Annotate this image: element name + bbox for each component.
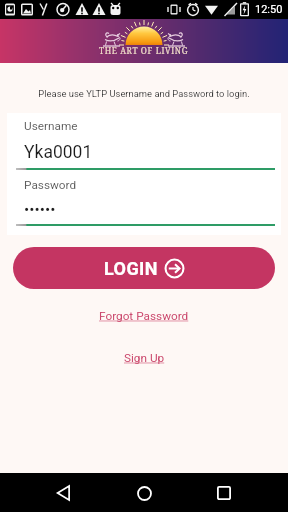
staticText: •••••• <box>24 201 56 219</box>
staticText: LOGIN <box>104 258 158 279</box>
staticText: Sign Up <box>124 351 165 365</box>
staticText: Please use YLTP Username and Password to… <box>0 88 288 99</box>
staticText: Yka0001 <box>24 142 93 163</box>
staticText: THE ART OF LIVING <box>99 45 189 56</box>
staticText: Forgot Password <box>99 309 189 323</box>
staticText: Password <box>24 178 77 192</box>
button[interactable]: Back <box>46 475 82 511</box>
button[interactable]: Forgot Password <box>95 307 193 325</box>
button[interactable]: Recents <box>206 475 242 511</box>
button[interactable]: LOGIN <box>13 247 275 289</box>
button[interactable]: Sign Up <box>120 349 169 367</box>
button[interactable]: Home <box>126 475 162 511</box>
staticText: Username <box>24 119 78 133</box>
staticText: 12:50 <box>255 3 283 16</box>
